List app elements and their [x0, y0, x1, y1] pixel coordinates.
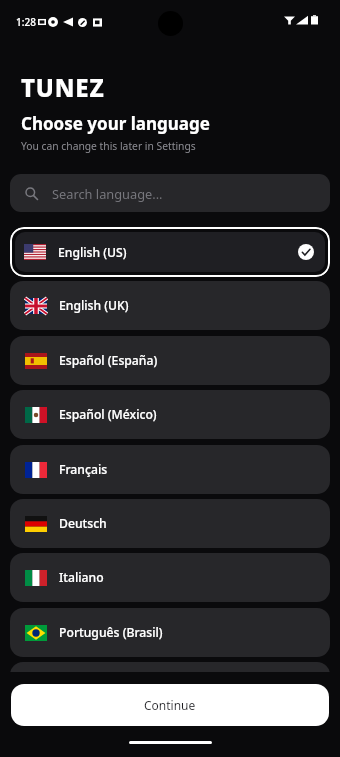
button[interactable]: Nederlands — [10, 662, 330, 672]
button[interactable]: Continue — [11, 684, 329, 726]
staticText: Continue — [144, 697, 196, 713]
button[interactable]: Español (España) — [10, 336, 330, 385]
button[interactable]: Search — [10, 174, 330, 212]
staticText: Français — [59, 461, 108, 478]
staticText: Português (Brasil) — [59, 624, 163, 641]
staticText: Deutsch — [59, 515, 107, 532]
staticText: Italiano — [59, 569, 104, 586]
other: Selected — [298, 244, 314, 260]
staticText: Choose your language — [21, 112, 210, 135]
staticText: 1:28 — [16, 15, 36, 29]
button[interactable]: Português (Brasil) — [10, 608, 330, 657]
button[interactable]: Français — [10, 445, 330, 494]
button[interactable]: Español (México) — [10, 390, 330, 439]
other: Search — [25, 187, 38, 200]
staticText: TUNEZ — [21, 71, 105, 104]
button[interactable]: English (UK) — [10, 281, 330, 330]
staticText: Search language... — [52, 185, 163, 202]
staticText: You can change this later in Settings — [21, 139, 196, 153]
button[interactable]: Italiano — [10, 553, 330, 602]
button[interactable]: Deutsch — [10, 499, 330, 548]
staticText: English (US) — [58, 244, 127, 261]
staticText: Español (México) — [59, 406, 157, 423]
button[interactable]: English (US) — [15, 232, 325, 272]
staticText: English (UK) — [59, 297, 129, 314]
staticText: Español (España) — [59, 352, 158, 369]
